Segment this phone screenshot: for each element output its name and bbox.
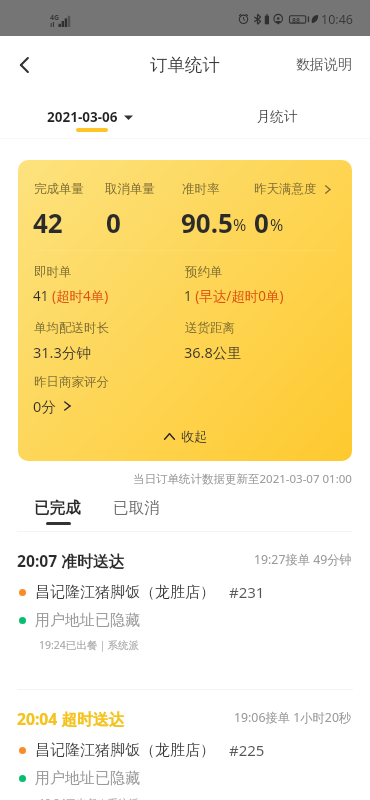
staticText: 90.5 [181, 205, 233, 240]
staticText: 收起 [181, 428, 207, 444]
staticText: 已取消 [113, 498, 160, 518]
staticText: 当日订单统计数据更新至2021-03-07 01:00 [133, 471, 352, 487]
button[interactable]: 20:07 准时送达 [0, 544, 370, 690]
staticText: 用户地址已隐藏 [35, 769, 140, 788]
staticText: 0 [106, 205, 121, 240]
button[interactable]: 2021-03-06 [47, 108, 133, 126]
staticText: 昌记隆江猪脚饭（龙胜店） [35, 583, 215, 602]
staticText: #225 [229, 740, 265, 760]
staticText: 31.3分钟 [33, 342, 91, 362]
button[interactable]: 昨天满意度 [254, 181, 331, 197]
staticText: ıl [50, 19, 55, 29]
staticText: 月统计 [257, 108, 298, 125]
button[interactable]: 月统计 [257, 108, 298, 125]
button[interactable]: 20:04 超时送达 [0, 702, 370, 800]
staticText: 36.8公里 [184, 342, 242, 362]
staticText: 19:06接单 1小时20秒 [234, 709, 352, 726]
staticText: 单均配送时长 [34, 320, 109, 336]
staticText: 42 [33, 205, 63, 240]
staticText: 0 [254, 205, 269, 240]
staticText: 订单统计 [150, 54, 220, 76]
staticText: 20:04 超时送达 [17, 708, 125, 729]
button[interactable]: 收起 [18, 428, 352, 444]
button[interactable]: 0分 [33, 396, 71, 416]
button[interactable]: 已取消 [113, 498, 160, 518]
staticText: % [270, 214, 284, 236]
staticText: 1 (早达/超时0单) [184, 287, 284, 305]
staticText: 完成单量 [34, 181, 84, 197]
staticText: 取消单量 [105, 181, 155, 197]
staticText: 昨日商家评分 [34, 374, 109, 390]
staticText: 20:07 准时送达 [17, 550, 125, 571]
staticText: 昌记隆江猪脚饭（龙胜店） [35, 741, 215, 760]
staticText: 昨天满意度 [254, 181, 317, 197]
staticText: 预约单 [185, 264, 223, 280]
staticText: % [233, 214, 247, 236]
staticText: 41 (超时4单) [33, 287, 109, 305]
staticText: 19:24已出餐｜系统派 [39, 638, 140, 652]
staticText: 4G [50, 13, 60, 23]
staticText: 19:24已出餐｜系统派 [39, 796, 140, 800]
staticText: 0分 [33, 396, 56, 416]
staticText: 即时单 [34, 264, 72, 280]
button[interactable]: Back [5, 45, 45, 85]
staticText: 用户地址已隐藏 [35, 611, 140, 630]
staticText: 88 [292, 16, 301, 26]
staticText: 准时率 [182, 181, 220, 197]
staticText: 送货距离 [185, 320, 235, 336]
staticText: 2021-03-06 [47, 108, 118, 126]
staticText: 10:46 [321, 11, 353, 28]
staticText: #231 [229, 582, 265, 602]
staticText: 已完成 [34, 498, 81, 518]
button[interactable]: 已完成 [34, 498, 81, 518]
button[interactable]: 完成单量 [18, 160, 352, 461]
button[interactable]: 数据说明 [296, 56, 370, 74]
staticText: 19:27接单 49分钟 [254, 551, 352, 568]
staticText: 数据说明 [296, 56, 352, 74]
